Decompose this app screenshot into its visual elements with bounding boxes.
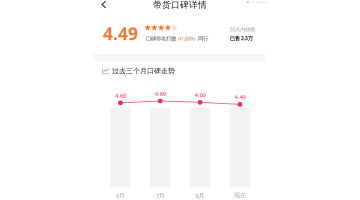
staticText: 30天内销售 [229,26,255,33]
staticText: 同行 [196,35,208,42]
staticText: 4.49 [103,22,138,45]
staticText: 已售 2.3万 [230,35,253,42]
staticText: 7月 [156,191,165,200]
staticText: 4.49 [234,93,245,101]
staticText: 41.88% [178,35,196,42]
staticText: 4.60 [115,91,126,99]
staticText: 过去三个月口碑走势 [112,66,175,75]
staticText: 口碑排名打败 [146,35,178,42]
button[interactable]: 返回 [96,0,112,10]
staticText: 抖音电商罗盘 [250,0,268,4]
staticText: 带货口碑详情 [153,0,207,10]
staticText: 4.69 [155,89,166,98]
staticText: 6月 [116,191,125,200]
staticText: 8月 [196,191,205,200]
staticText: 现在 [234,191,246,199]
staticText: 4.60 [195,91,206,99]
